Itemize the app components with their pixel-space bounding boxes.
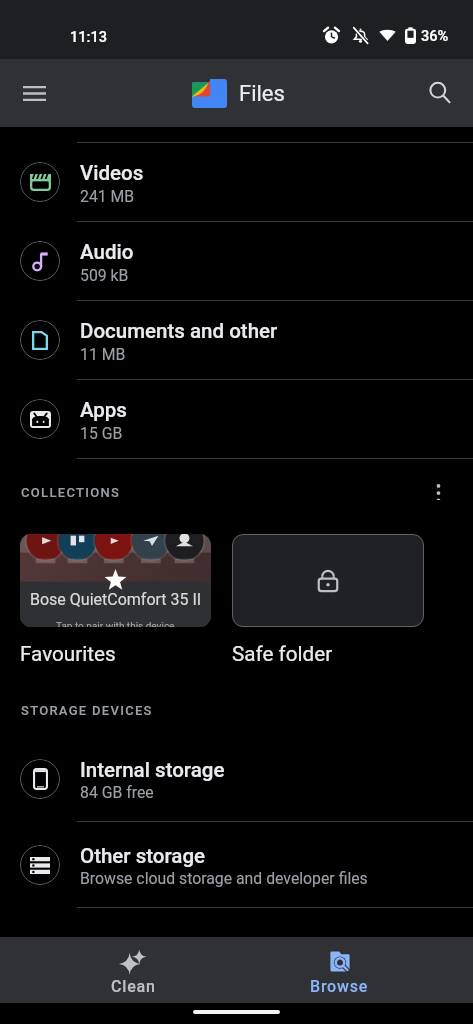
staticText: Browse cloud storage and developer files <box>80 869 368 888</box>
staticText: Clean <box>111 977 156 996</box>
staticText: Apps <box>80 398 127 422</box>
staticText: Audio <box>80 240 134 264</box>
staticText: Other storage <box>80 844 206 868</box>
staticText: Internal storage <box>80 758 225 782</box>
button[interactable]: Other storage <box>0 822 473 907</box>
button[interactable]: Bose QuietComfort 35 II <box>20 534 211 627</box>
staticText: COLLECTIONS <box>21 485 121 500</box>
staticText: Browse <box>310 977 369 996</box>
staticText: 84 GB free <box>80 783 154 802</box>
staticText: 241 MB <box>80 187 135 206</box>
button[interactable]: Search <box>416 69 464 117</box>
staticText: STORAGE DEVICES <box>21 703 153 718</box>
staticText: Tap to pair with this device <box>56 621 175 627</box>
button[interactable]: Apps <box>0 380 473 458</box>
staticText: 509 kB <box>80 266 129 285</box>
staticText: Files <box>239 81 285 107</box>
staticText: Documents and other <box>80 319 278 343</box>
button[interactable]: Audio <box>0 222 473 300</box>
staticText: 36% <box>421 27 449 44</box>
button[interactable]: Videos <box>0 143 473 221</box>
button[interactable]: Safe folder <box>232 534 424 627</box>
staticText: 11:13 <box>70 28 108 45</box>
staticText: 15 GB <box>80 424 123 443</box>
button[interactable]: Documents and other <box>0 301 473 379</box>
staticText: Favourites <box>20 642 116 666</box>
button[interactable]: Internal storage <box>0 736 473 821</box>
button[interactable]: Open navigation menu <box>10 69 58 117</box>
staticText: Videos <box>80 161 144 185</box>
button[interactable]: Browse <box>236 937 443 1003</box>
button[interactable]: Clean <box>30 937 236 1003</box>
staticText: 11 MB <box>80 345 126 364</box>
button[interactable]: More options <box>418 484 458 500</box>
staticText: Bose QuietComfort 35 II <box>30 590 202 609</box>
staticText: Safe folder <box>232 642 333 666</box>
